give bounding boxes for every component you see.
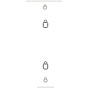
button[interactable]: Front door lock [0,14,90,41]
button[interactable]: Lock [0,76,90,90]
button[interactable]: Back door lock [0,60,90,76]
button[interactable]: Lock [0,0,90,14]
